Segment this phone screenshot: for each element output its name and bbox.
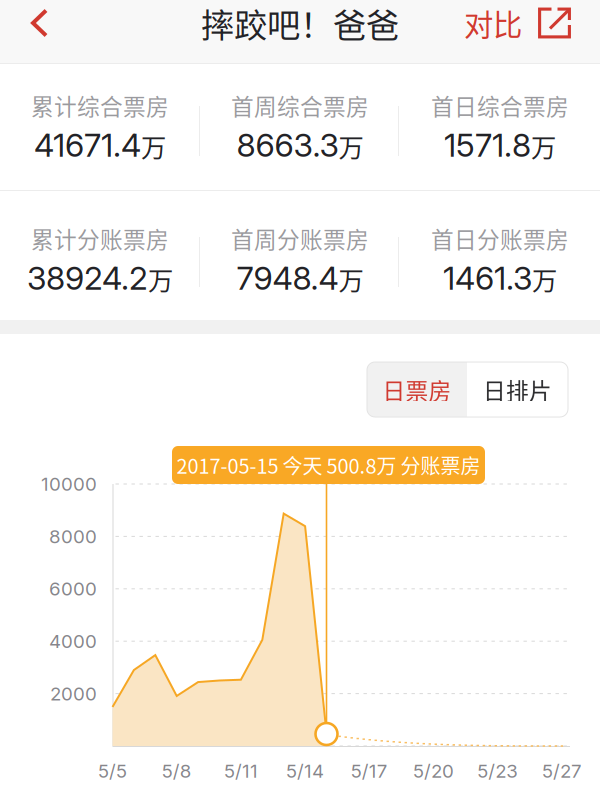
staticText: 日票房 — [382, 373, 451, 406]
staticText: 7948.4 — [236, 259, 338, 297]
staticText: 4000 — [49, 630, 97, 652]
staticText: 5/17 — [351, 760, 388, 782]
button[interactable]: Back — [0, 0, 79, 46]
staticText: 6000 — [49, 577, 97, 600]
staticText: 万 — [531, 128, 556, 165]
staticText: 累计分账票房 — [31, 222, 169, 255]
staticText: 对比 — [464, 2, 522, 44]
staticText: 摔跤吧！爸爸 — [201, 0, 399, 47]
staticText: 累计综合票房 — [31, 89, 169, 122]
button[interactable]: Share — [527, 0, 582, 46]
staticText: 1571.8 — [444, 126, 531, 164]
staticText: 5/20 — [413, 760, 454, 782]
staticText: 5/11 — [224, 760, 258, 782]
staticText: 万 — [338, 261, 363, 298]
button[interactable]: 日票房 — [367, 362, 467, 417]
staticText: 首周综合票房 — [231, 89, 369, 122]
staticText: 5/14 — [286, 760, 324, 782]
staticText: 38924.2 — [27, 259, 148, 297]
staticText: 万 — [532, 261, 557, 298]
staticText: 2000 — [50, 682, 97, 705]
staticText: 万 — [141, 128, 166, 165]
staticText: 首日分账票房 — [431, 222, 569, 255]
staticText: 万 — [338, 128, 363, 165]
staticText: 首日综合票房 — [431, 89, 569, 122]
staticText: 5/23 — [477, 760, 518, 782]
staticText: 5/8 — [162, 760, 192, 782]
staticText: 8000 — [49, 525, 97, 548]
staticText: 10000 — [41, 473, 97, 495]
staticText: 2017-05-15 今天 500.8万 分账票房 — [176, 450, 480, 479]
staticText: 日排片 — [483, 373, 552, 406]
staticText: 1461.3 — [443, 259, 532, 297]
button[interactable]: 对比 — [459, 0, 527, 46]
button[interactable]: 日排片 — [467, 362, 568, 417]
staticText: 5/5 — [98, 760, 127, 782]
staticText: 8663.3 — [236, 126, 338, 164]
staticText: 万 — [148, 261, 173, 298]
staticText: 41671.4 — [34, 126, 141, 164]
staticText: 5/27 — [542, 760, 582, 782]
staticText: 首周分账票房 — [231, 222, 369, 255]
